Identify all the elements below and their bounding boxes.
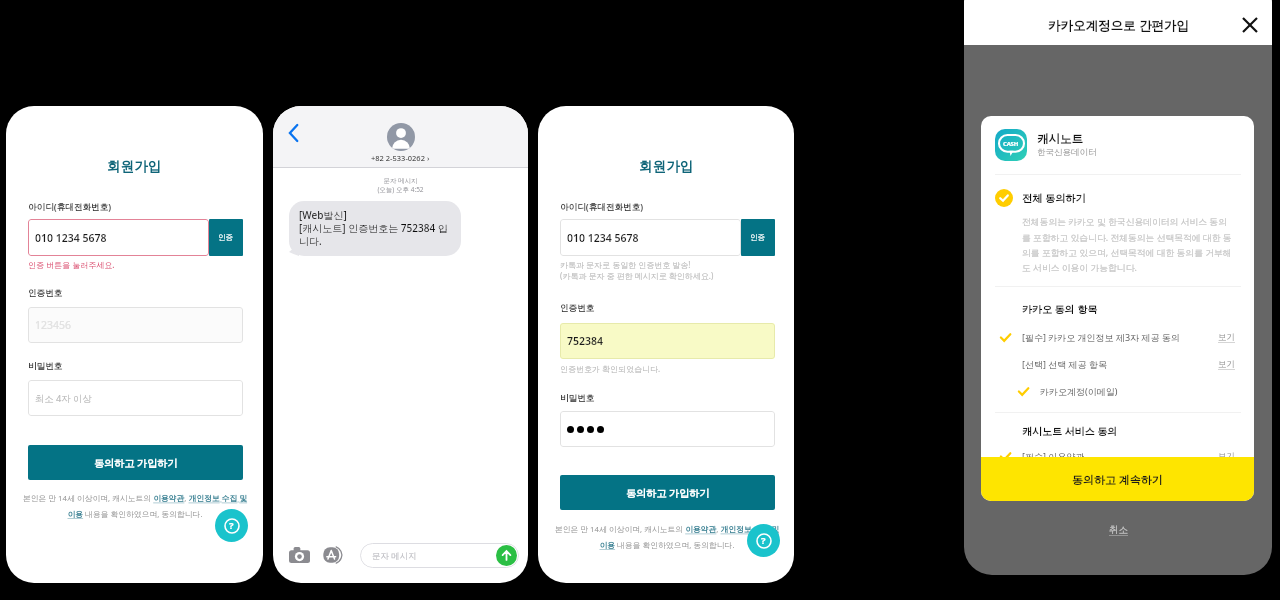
staticText: 캐시노트 서비스 동의 — [1022, 424, 1118, 438]
staticText: (오늘) 오후 4:52 — [273, 185, 528, 194]
staticText: 전체동의는 카카오 및 한국신용데이터의 서비스 동의를 포함하고 있습니다. … — [1022, 216, 1235, 273]
staticText: ? — [229, 519, 234, 532]
staticText: 카카오 동의 항목 — [1022, 302, 1098, 316]
staticText: 아이디(휴대전화번호) — [560, 201, 644, 213]
staticText: [필수] 이용약관 — [1022, 450, 1085, 462]
staticText: 카톡과 문자로 동일한 인증번호 발송! — [560, 259, 691, 270]
staticText: 캐시노트 — [1037, 132, 1083, 146]
staticText: 동의하고 가입하기 — [94, 456, 178, 470]
button[interactable]: 취소 — [1105, 520, 1132, 540]
staticText: [선택] 선택 제공 항목 — [1022, 358, 1107, 370]
button[interactable]: Close — [1238, 13, 1262, 37]
staticText: 카카오계정으로 간편가입 — [1048, 17, 1189, 34]
button[interactable]: Send — [496, 545, 517, 566]
staticText: 보기 — [1218, 451, 1235, 462]
staticText: 010 1234 5678 — [35, 231, 107, 245]
button[interactable]: Help — [747, 524, 780, 557]
staticText: 인증번호 — [560, 303, 595, 314]
staticText: [필수] 카카오 개인정보 제3자 제공 동의 — [1022, 331, 1180, 343]
button[interactable]: Help — [215, 509, 248, 542]
staticText: 보기 — [1218, 359, 1235, 370]
staticText: ? — [761, 534, 766, 547]
button[interactable]: [필수] 이용약관 — [995, 449, 1241, 463]
button[interactable]: Camera — [288, 544, 310, 566]
staticText: 회원가입 — [107, 158, 162, 175]
button[interactable]: 동의하고 가입하기 — [560, 475, 775, 510]
button[interactable]: 동의하고 계속하기 — [981, 457, 1254, 501]
staticText: 최소 4자 이상 — [35, 392, 92, 405]
staticText: CASH — [1003, 140, 1019, 148]
staticText: 한국신용데이터 — [1037, 147, 1097, 158]
staticText: 문자 메시지 — [372, 550, 417, 562]
button[interactable]: 문자 메시지 — [360, 543, 519, 568]
staticText: 취소 — [1109, 524, 1128, 536]
staticText: 동의하고 가입하기 — [626, 486, 710, 500]
staticText: 인증번호 — [28, 288, 63, 299]
staticText: 동의하고 계속하기 — [1072, 472, 1163, 487]
button[interactable]: Back — [289, 125, 298, 141]
button[interactable]: App Store — [322, 544, 344, 566]
staticText: +82 2-533-0262 › — [371, 153, 430, 163]
staticText: 인증 — [750, 233, 766, 243]
staticText: 010 1234 5678 — [567, 231, 639, 245]
staticText: 752384 — [567, 334, 604, 348]
staticText: 문자 메시지 — [273, 176, 528, 185]
staticText: 전체 동의하기 — [1022, 191, 1086, 205]
staticText: 123456 — [35, 318, 72, 332]
staticText: 회원가입 — [639, 158, 694, 175]
button[interactable]: 전체 동의하기 — [995, 189, 1086, 207]
staticText: 본인은 만 14세 이상이며, 캐시노트의 이용약관, 개인정보 수집 및 이용… — [22, 493, 248, 519]
staticText: [Web발신] [캐시노트] 인증번호는 752384 입니다. — [299, 208, 453, 248]
button[interactable]: 인증 — [209, 219, 243, 256]
staticText: 인증번호가 확인되었습니다. — [560, 363, 661, 374]
staticText: 본인은 만 14세 이상이며, 캐시노트의 이용약관, 개인정보 수집 및 이용… — [554, 524, 780, 550]
button[interactable]: 카카오계정(이메일) — [995, 384, 1241, 398]
button[interactable]: 동의하고 가입하기 — [28, 445, 243, 480]
button[interactable]: [필수] 카카오 개인정보 제3자 제공 동의 — [995, 330, 1241, 344]
staticText: 아이디(휴대전화번호) — [28, 201, 112, 213]
staticText: 카카오계정(이메일) — [1040, 385, 1118, 397]
staticText: 인증 버튼을 눌러주세요. — [28, 259, 115, 270]
staticText: (카톡과 문자 중 편한 메시지로 확인하세요.) — [560, 270, 714, 281]
button[interactable]: 인증 — [741, 219, 775, 256]
staticText: 비밀번호 — [28, 361, 63, 372]
button[interactable]: [선택] 선택 제공 항목 — [995, 357, 1241, 371]
staticText: 인증 — [218, 233, 234, 243]
staticText: 보기 — [1218, 332, 1235, 343]
staticText: 비밀번호 — [560, 393, 595, 404]
